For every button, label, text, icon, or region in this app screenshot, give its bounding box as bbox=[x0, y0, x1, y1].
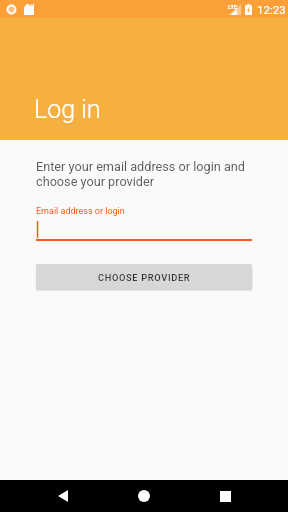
staticText: Enter your email address or login and ch… bbox=[36, 159, 252, 189]
staticText: CHOOSE PROVIDER bbox=[98, 272, 191, 283]
staticText: Email address or login bbox=[36, 206, 125, 217]
button[interactable]: CHOOSE PROVIDER bbox=[36, 264, 252, 290]
button[interactable]: Email address or login bbox=[36, 206, 252, 241]
staticText: Log in bbox=[34, 95, 101, 124]
staticText: LTE bbox=[228, 4, 238, 11]
button[interactable]: Home bbox=[120, 480, 168, 512]
button[interactable]: Recent apps bbox=[201, 480, 249, 512]
button[interactable]: Back bbox=[39, 480, 87, 512]
staticText: 12:23 bbox=[257, 3, 286, 16]
